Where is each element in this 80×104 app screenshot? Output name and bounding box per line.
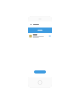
button[interactable] xyxy=(34,70,46,73)
button[interactable]: Back xyxy=(29,24,33,25)
